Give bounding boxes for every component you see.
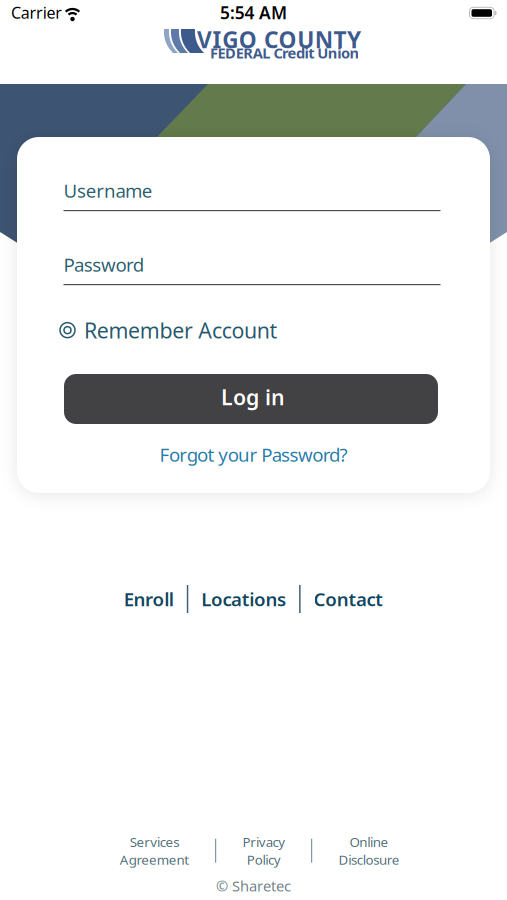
button[interactable]: Remember Account bbox=[60, 316, 277, 344]
staticText: © Sharetec bbox=[216, 876, 291, 895]
staticText: 5:54 AM bbox=[220, 1, 287, 24]
staticText: Forgot your Password? bbox=[159, 442, 347, 467]
button[interactable]: Privacy Policy bbox=[242, 833, 285, 868]
button[interactable]: Contact bbox=[301, 587, 396, 611]
staticText: Locations bbox=[201, 587, 286, 611]
button[interactable]: Services Agreement bbox=[120, 833, 189, 868]
staticText: Remember Account bbox=[84, 316, 277, 344]
button[interactable]: Password bbox=[63, 252, 440, 286]
staticText: Enroll bbox=[124, 587, 174, 611]
button[interactable]: Locations bbox=[188, 587, 299, 611]
staticText: Username bbox=[63, 178, 153, 203]
staticText: Services Agreement bbox=[120, 833, 189, 868]
staticText: Privacy Policy bbox=[242, 833, 285, 868]
staticText: VIGO COUNTY bbox=[197, 24, 361, 55]
staticText: FEDERAL Credit Union bbox=[210, 43, 359, 62]
button[interactable]: Log in bbox=[64, 374, 438, 424]
staticText: Contact bbox=[314, 587, 383, 611]
button[interactable]: Enroll bbox=[111, 587, 187, 611]
button[interactable]: Forgot your Password? bbox=[159, 442, 347, 467]
button[interactable]: Username bbox=[63, 178, 440, 212]
staticText: Password bbox=[63, 252, 144, 277]
staticText: Carrier bbox=[11, 2, 62, 23]
staticText: Log in bbox=[221, 383, 285, 411]
staticText: Online Disclosure bbox=[338, 833, 399, 868]
button[interactable]: Online Disclosure bbox=[338, 833, 399, 868]
